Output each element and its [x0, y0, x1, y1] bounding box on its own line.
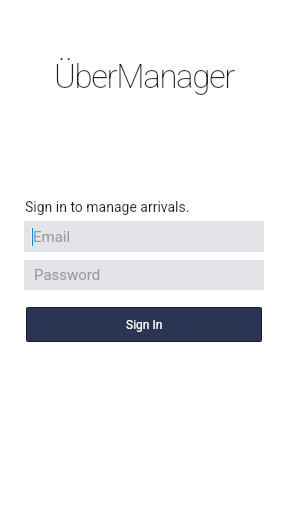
staticText: ÜberManager — [0, 57, 288, 96]
button[interactable]: Password — [24, 260, 264, 290]
staticText: Password — [34, 266, 101, 284]
staticText: Sign In — [126, 318, 163, 332]
staticText: Sign in to manage arrivals. — [25, 199, 190, 215]
staticText: Email — [33, 228, 71, 246]
button[interactable]: Sign In — [27, 308, 261, 341]
button[interactable]: Email — [24, 221, 264, 252]
